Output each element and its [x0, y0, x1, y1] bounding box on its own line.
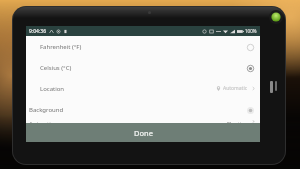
button[interactable]: Done — [26, 123, 260, 142]
staticText: Floating — [227, 120, 248, 123]
staticText: Celsius (°C) — [40, 64, 72, 72]
button[interactable]: Celsius (°C) — [26, 57, 260, 78]
staticText: Animation — [29, 120, 59, 123]
button[interactable]: Background colour — [244, 104, 256, 116]
button[interactable]: Background — [26, 99, 260, 120]
staticText: Background — [29, 106, 64, 114]
staticText: Done — [134, 128, 153, 138]
staticText: Fahrenheit (°F) — [40, 43, 82, 51]
staticText: 9:04:36 — [29, 28, 47, 35]
staticText: 100% — [245, 28, 257, 34]
button[interactable]: Selected — [244, 62, 256, 74]
button[interactable]: Animation — [26, 120, 260, 123]
button[interactable]: Fahrenheit (°F) — [26, 36, 260, 57]
staticText: Location — [40, 85, 65, 93]
button[interactable]: Not selected — [244, 41, 256, 53]
staticText: Automatic — [223, 85, 248, 92]
button[interactable]: Location — [26, 78, 260, 99]
button[interactable]: App badge — [269, 10, 283, 24]
